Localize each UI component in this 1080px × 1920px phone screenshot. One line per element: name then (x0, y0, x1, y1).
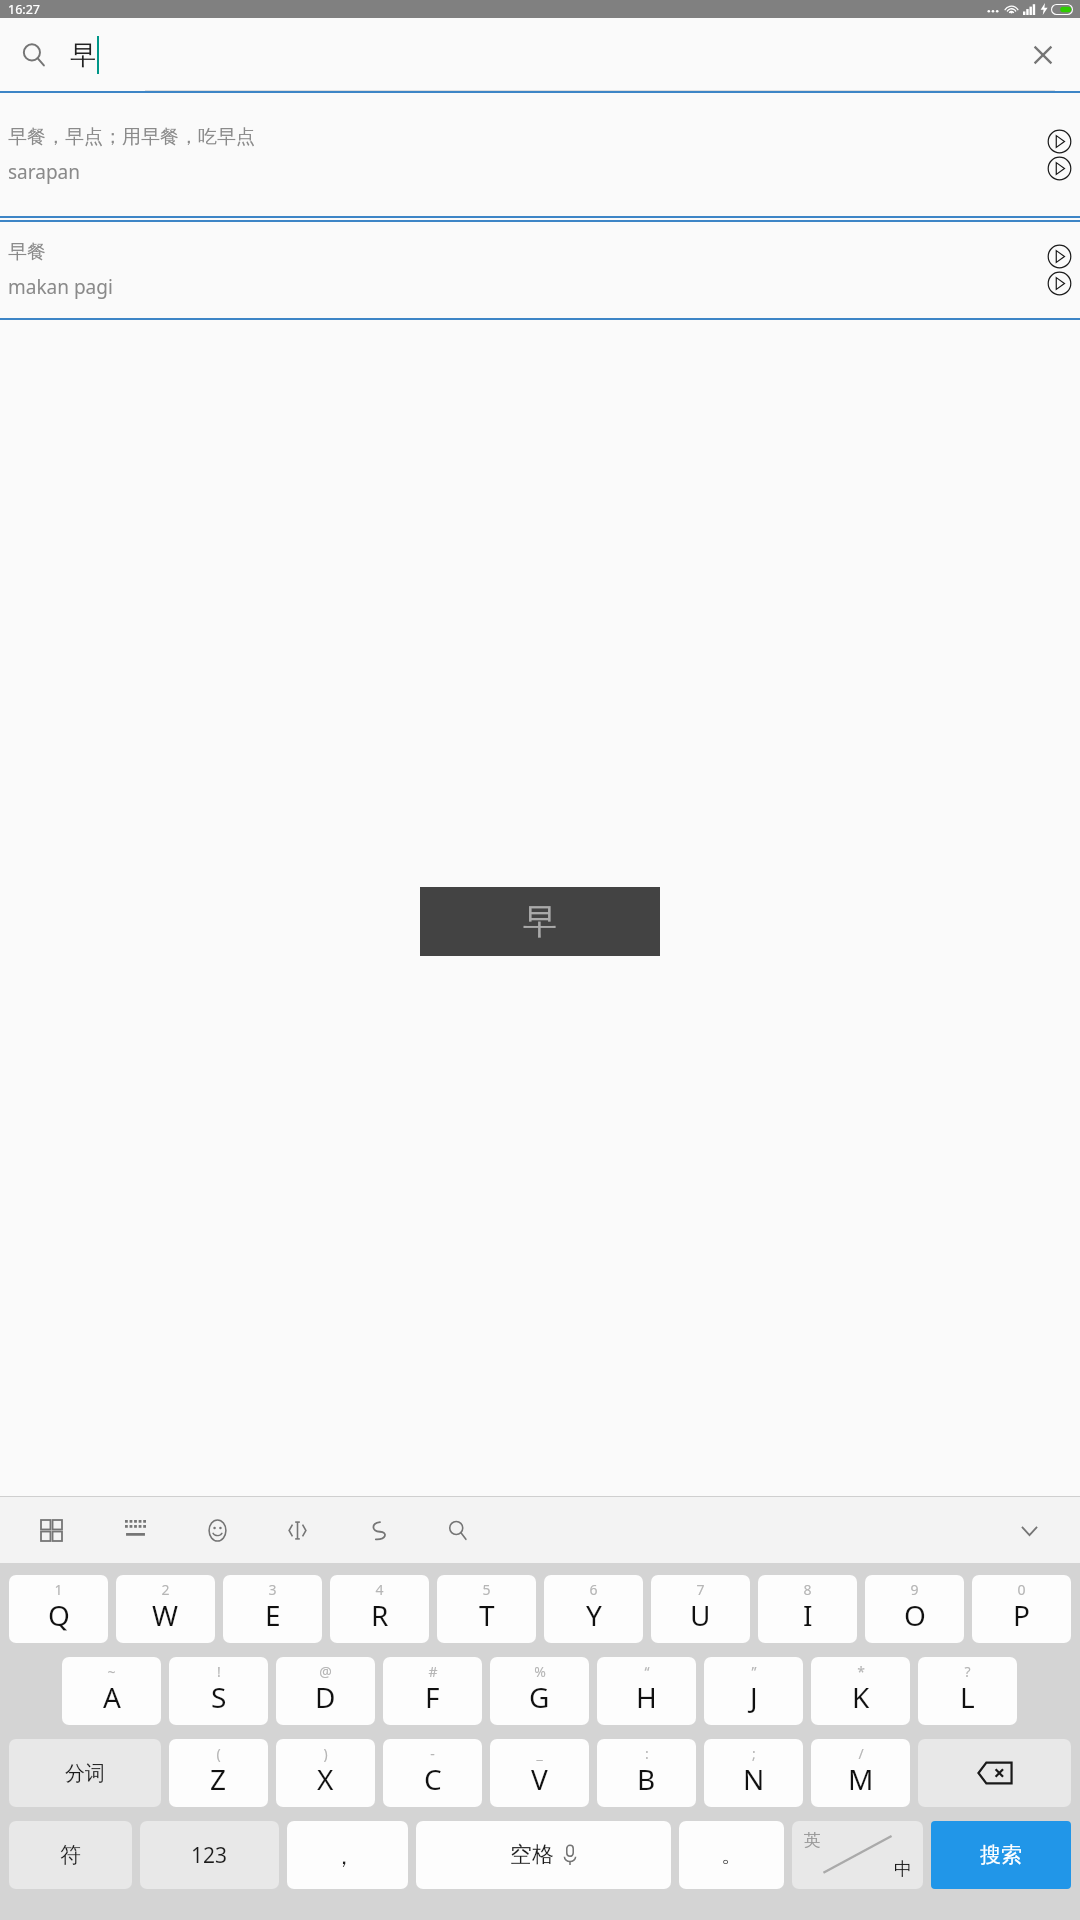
button[interactable]: ! (169, 1657, 268, 1725)
button[interactable]: Play pronunciation (1047, 271, 1072, 296)
button[interactable]: Hide keyboard (1012, 1513, 1046, 1547)
staticText: D (315, 1678, 336, 1716)
button[interactable]: 3 (223, 1575, 322, 1643)
button[interactable]: 8 (758, 1575, 857, 1643)
staticText: R (371, 1596, 389, 1634)
staticText: 1 (54, 1580, 63, 1599)
staticText: L (960, 1678, 975, 1716)
staticText: 3 (268, 1580, 277, 1599)
staticText: G (529, 1678, 550, 1716)
staticText: P (1013, 1596, 1030, 1634)
staticText: ; (752, 1744, 756, 1763)
button[interactable]: 7 (651, 1575, 750, 1643)
button[interactable]: 0 (972, 1575, 1071, 1643)
button[interactable] (918, 1739, 1071, 1807)
staticText: 分词 (65, 1761, 105, 1786)
button[interactable]: - (383, 1739, 482, 1807)
staticText: Q (48, 1596, 70, 1634)
button[interactable]: 6 (544, 1575, 643, 1643)
staticText: sarapan (8, 159, 80, 185)
staticText: 中 (894, 1858, 912, 1881)
button[interactable]: 早餐，早点；用早餐，吃早点 (0, 93, 1080, 216)
staticText: U (690, 1596, 711, 1634)
button[interactable]: Keyboard (118, 1513, 152, 1547)
staticText: 4 (375, 1580, 384, 1599)
button[interactable]: Emoji (200, 1513, 234, 1547)
button[interactable]: ? (918, 1657, 1017, 1725)
button[interactable]: 4 (330, 1575, 429, 1643)
button[interactable]: ~ (62, 1657, 161, 1725)
button[interactable]: 搜索 (931, 1821, 1071, 1889)
staticText: 。 (721, 1841, 743, 1869)
button[interactable]: Handwriting (360, 1513, 394, 1547)
staticText: - (430, 1744, 435, 1763)
button[interactable]: 5 (437, 1575, 536, 1643)
button[interactable]: Keyboard layouts (34, 1513, 68, 1547)
staticText: C (424, 1760, 442, 1798)
staticText: 7 (696, 1580, 705, 1599)
button[interactable]: : (597, 1739, 696, 1807)
button[interactable]: ” (704, 1657, 803, 1725)
staticText: S (211, 1678, 227, 1716)
staticText: H (636, 1678, 657, 1716)
staticText: 123 (191, 1841, 228, 1870)
button[interactable]: 9 (865, 1575, 964, 1643)
staticText: B (637, 1760, 656, 1798)
button[interactable]: _ (490, 1739, 589, 1807)
button[interactable]: 123 (140, 1821, 279, 1889)
staticText: O (904, 1596, 926, 1634)
staticText: 16:27 (8, 1, 40, 18)
staticText: 早 (70, 39, 96, 72)
staticText: K (852, 1678, 870, 1716)
staticText: 2 (161, 1580, 170, 1599)
button[interactable]: Search (21, 42, 47, 68)
staticText: A (103, 1678, 121, 1716)
staticText: # (428, 1662, 438, 1681)
button[interactable]: * (811, 1657, 910, 1725)
staticText: 8 (803, 1580, 812, 1599)
staticText: 早 (523, 900, 557, 943)
button[interactable]: @ (276, 1657, 375, 1725)
staticText: E (265, 1596, 281, 1634)
button[interactable]: Edit text (280, 1513, 314, 1547)
button[interactable]: 。 (679, 1821, 784, 1889)
button[interactable]: Play pronunciation (1047, 129, 1072, 154)
staticText: * (857, 1662, 865, 1681)
staticText: makan pagi (8, 274, 113, 300)
staticText: ” (751, 1662, 757, 1681)
button[interactable]: 空格 (416, 1821, 671, 1889)
staticText: 6 (589, 1580, 598, 1599)
staticText: 5 (482, 1580, 491, 1599)
button[interactable]: 分词 (9, 1739, 161, 1807)
staticText: / (858, 1744, 864, 1763)
staticText: ( (216, 1744, 221, 1763)
staticText: 英 (804, 1830, 821, 1851)
staticText: M (848, 1760, 874, 1798)
button[interactable]: “ (597, 1657, 696, 1725)
button[interactable]: 早餐 (0, 222, 1080, 318)
button[interactable]: / (811, 1739, 910, 1807)
staticText: X (317, 1760, 334, 1798)
staticText: F (425, 1678, 440, 1716)
button[interactable]: ， (287, 1821, 408, 1889)
button[interactable]: % (490, 1657, 589, 1725)
staticText: : (645, 1744, 649, 1763)
button[interactable]: ) (276, 1739, 375, 1807)
button[interactable]: Play pronunciation (1047, 244, 1072, 269)
button[interactable]: # (383, 1657, 482, 1725)
staticText: J (750, 1678, 758, 1716)
button[interactable]: Play pronunciation (1047, 156, 1072, 181)
staticText: 9 (910, 1580, 919, 1599)
staticText: 0 (1017, 1580, 1026, 1599)
button[interactable]: 2 (116, 1575, 215, 1643)
button[interactable]: ; (704, 1739, 803, 1807)
button[interactable]: Search (440, 1513, 474, 1547)
button[interactable]: 早 (420, 887, 660, 956)
button[interactable]: 符 (9, 1821, 132, 1889)
staticText: I (803, 1596, 813, 1634)
button[interactable]: ( (169, 1739, 268, 1807)
button[interactable]: 1 (9, 1575, 108, 1643)
button[interactable]: Clear (1028, 40, 1058, 70)
staticText: Y (586, 1596, 602, 1634)
button[interactable]: 英 (792, 1821, 923, 1889)
